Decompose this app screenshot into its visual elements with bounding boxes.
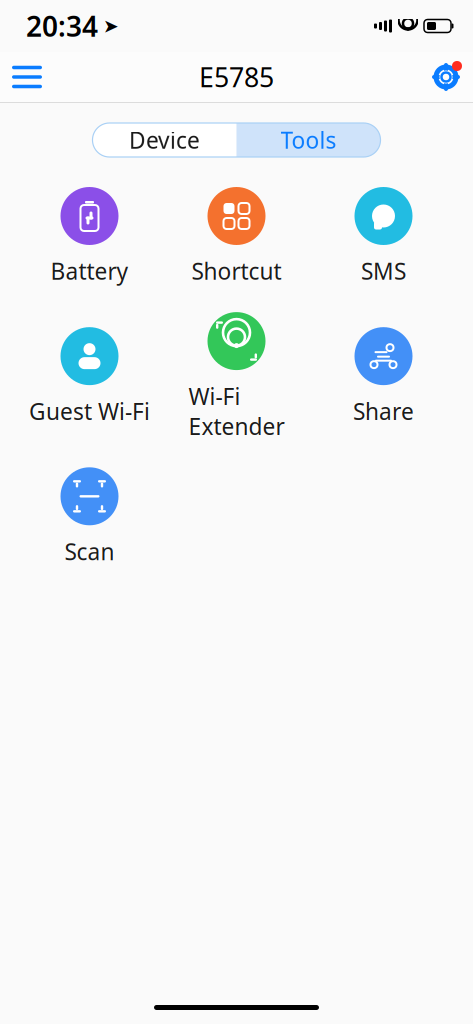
staticText: Wi-Fi Extender <box>188 381 284 441</box>
staticText: Shortcut <box>191 256 281 286</box>
button[interactable]: Guest Wi-Fi <box>16 327 163 426</box>
button[interactable]: Share <box>310 327 457 426</box>
button[interactable]: Device <box>92 123 236 157</box>
button[interactable]: Menu <box>0 55 54 99</box>
staticText: Tools <box>280 125 336 155</box>
button[interactable]: Scan <box>16 467 163 566</box>
staticText: E5785 <box>199 59 274 95</box>
button[interactable]: Settings <box>419 55 473 99</box>
staticText: SMS <box>361 256 406 286</box>
staticText: 20:34 <box>26 7 98 45</box>
staticText: Scan <box>64 536 114 566</box>
staticText: Battery <box>50 256 128 286</box>
button[interactable]: Shortcut <box>163 187 310 286</box>
staticText: Guest Wi-Fi <box>29 396 150 426</box>
staticText: Device <box>129 125 200 155</box>
staticText: Share <box>353 396 414 426</box>
button[interactable]: Wi-Fi Extender <box>163 312 310 441</box>
button[interactable]: Battery <box>16 187 163 286</box>
staticText: ➤ <box>103 15 119 37</box>
button[interactable]: Tools <box>236 123 380 157</box>
button[interactable]: SMS <box>310 187 457 286</box>
